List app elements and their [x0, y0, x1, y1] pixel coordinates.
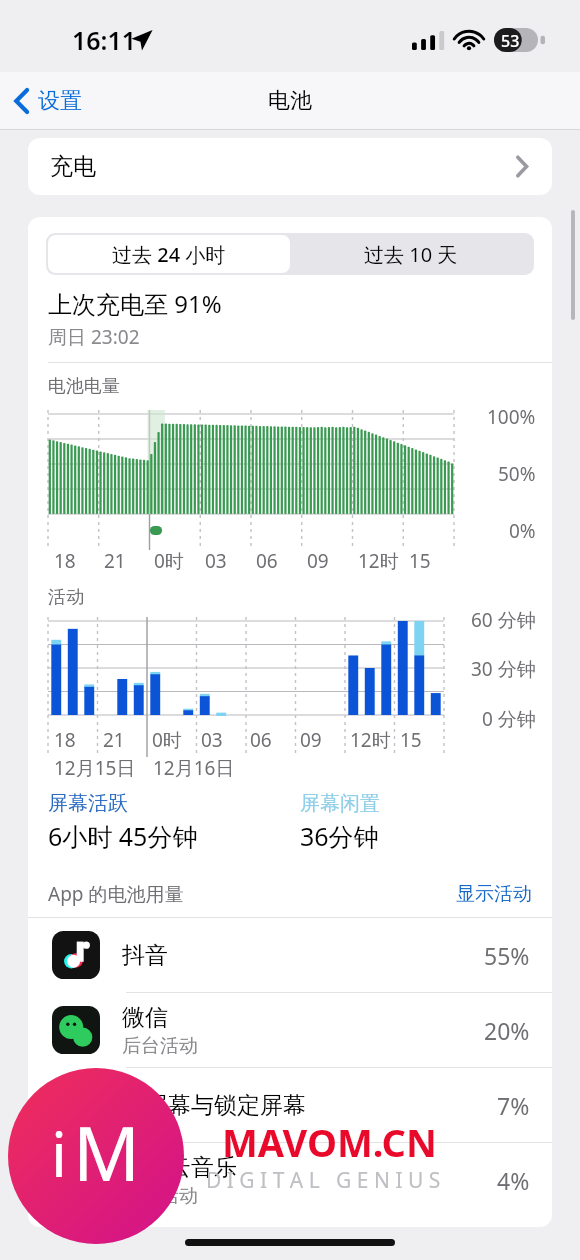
- button[interactable]: 主屏幕与锁定屏幕: [28, 1068, 552, 1142]
- staticText: 12月15日: [54, 755, 136, 781]
- staticText: 53: [501, 30, 520, 52]
- staticText: i: [51, 1111, 67, 1195]
- button[interactable]: 返回设置: [14, 72, 134, 130]
- staticText: 06: [250, 727, 272, 753]
- staticText: 电池电量: [48, 375, 120, 398]
- staticText: 显示活动: [456, 882, 532, 906]
- staticText: 0时: [152, 727, 182, 753]
- staticText: 09: [300, 727, 322, 753]
- staticText: 充电: [50, 152, 96, 181]
- staticText: 设置: [38, 87, 82, 115]
- staticText: 7%: [497, 1090, 530, 1121]
- staticText: 活动: [48, 586, 84, 609]
- staticText: 后台活动: [122, 1184, 198, 1208]
- staticText: 主屏幕与锁定屏幕: [122, 1091, 306, 1120]
- staticText: 18: [54, 727, 76, 753]
- button[interactable]: 过去 10 天: [290, 235, 532, 273]
- staticText: D I G I T A L G E N I U S: [206, 1166, 441, 1195]
- staticText: 电池: [268, 87, 312, 115]
- staticText: 30 分钟: [471, 656, 536, 682]
- staticText: 50%: [498, 461, 536, 487]
- staticText: 15: [409, 548, 431, 574]
- staticText: App 的电池用量: [48, 881, 184, 907]
- staticText: 12时: [350, 727, 391, 753]
- staticText: 过去 24 小时: [112, 241, 226, 268]
- staticText: 6小时 45分钟: [48, 819, 198, 853]
- button[interactable]: 充电: [28, 138, 552, 195]
- staticText: 后台活动: [122, 1034, 198, 1058]
- staticText: 09: [307, 548, 329, 574]
- staticText: 上次充电至 91%: [48, 287, 222, 320]
- staticText: 18: [54, 548, 76, 574]
- staticText: MAVOM.CN: [222, 1116, 437, 1168]
- button[interactable]: 显示活动: [456, 882, 532, 906]
- staticText: 21: [104, 548, 126, 574]
- staticText: 0时: [154, 548, 184, 574]
- staticText: 20%: [484, 1015, 530, 1046]
- button[interactable]: 网易云音乐: [28, 1143, 552, 1217]
- staticText: 微信: [122, 1003, 168, 1032]
- staticText: 21: [103, 727, 125, 753]
- staticText: 12月16日: [153, 755, 235, 781]
- staticText: M: [73, 1102, 141, 1203]
- staticText: 屏幕活跃: [48, 791, 128, 816]
- staticText: 0 分钟: [482, 706, 536, 732]
- button[interactable]: 过去 24 小时: [48, 235, 290, 273]
- staticText: 60 分钟: [471, 607, 536, 633]
- staticText: 网易云音乐: [122, 1153, 237, 1182]
- button[interactable]: 抖音: [28, 918, 552, 992]
- button[interactable]: 微信: [28, 993, 552, 1067]
- staticText: 03: [201, 727, 223, 753]
- staticText: 0%: [509, 518, 536, 544]
- staticText: 周日 23:02: [48, 324, 140, 350]
- staticText: 100%: [487, 404, 536, 430]
- staticText: 12时: [358, 548, 399, 574]
- staticText: 抖音: [122, 941, 168, 970]
- staticText: 4%: [497, 1165, 530, 1196]
- staticText: 06: [256, 548, 278, 574]
- staticText: 屏幕闲置: [300, 791, 380, 816]
- staticText: 03: [205, 548, 227, 574]
- staticText: 16:11: [72, 23, 137, 57]
- staticText: 55%: [484, 940, 530, 971]
- staticText: 过去 10 天: [364, 241, 458, 268]
- staticText: 36分钟: [300, 819, 379, 853]
- staticText: 15: [400, 727, 422, 753]
